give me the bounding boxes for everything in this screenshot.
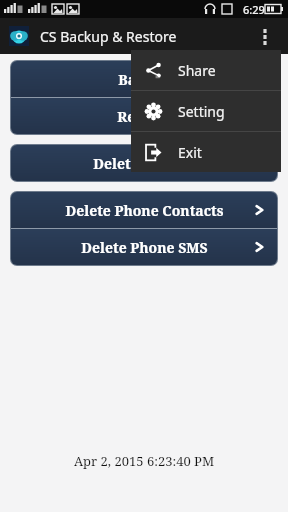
staticText: Apr 2, 2015 6:23:40 PM [0,452,288,470]
button[interactable]: Share [131,50,281,90]
staticText: Delete Phone Contacts [65,201,224,220]
button[interactable]: Restore [11,98,277,134]
staticText: CS Backup & Restore [40,27,177,46]
staticText: Exit [178,143,202,162]
button[interactable]: More options [250,21,280,51]
staticText: Share [178,61,216,80]
staticText: Delete Backup [93,154,195,173]
button[interactable]: Exit [131,132,281,172]
staticText: Delete Phone SMS [81,238,208,257]
button[interactable]: Delete Phone SMS [11,229,277,265]
button[interactable]: Delete Backup [11,145,277,181]
staticText: Backup [118,70,171,89]
staticText: Setting [178,102,225,121]
staticText: Restore [117,107,172,126]
button[interactable]: Delete Phone Contacts [11,192,277,228]
button[interactable]: Setting [131,91,281,131]
button[interactable]: Backup [11,61,277,97]
staticText: 6:29 [243,2,265,17]
